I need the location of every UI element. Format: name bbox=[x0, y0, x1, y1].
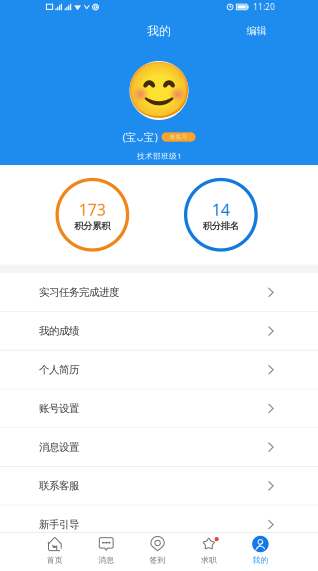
staticText: 11:20 bbox=[253, 2, 275, 12]
staticText: 个人简历 bbox=[39, 363, 79, 376]
staticText: 积分排名 bbox=[203, 220, 239, 232]
button[interactable]: 个人简历 bbox=[0, 351, 318, 390]
staticText: 积分累积 bbox=[74, 220, 110, 232]
button[interactable]: 我的成绩 bbox=[0, 312, 318, 351]
button[interactable]: 联系客服 bbox=[0, 467, 318, 506]
button[interactable]: 我的 bbox=[235, 533, 286, 571]
staticText: 求职 bbox=[201, 555, 217, 565]
staticText: 首页 bbox=[47, 555, 63, 565]
staticText: 新手引导 bbox=[39, 518, 79, 531]
staticText: 173 bbox=[79, 199, 106, 220]
button[interactable]: 实习任务完成进度 bbox=[0, 273, 318, 312]
button[interactable]: 编辑 bbox=[238, 14, 274, 48]
staticText: 我的 bbox=[252, 555, 268, 565]
staticText: 技术部班级1 bbox=[137, 150, 181, 161]
staticText: 账号设置 bbox=[39, 402, 79, 415]
button[interactable]: 消息设置 bbox=[0, 428, 318, 467]
staticText: 我的成绩 bbox=[39, 324, 79, 338]
staticText: 14 bbox=[212, 199, 230, 220]
staticText: 消息 bbox=[98, 555, 114, 565]
staticText: 联系客服 bbox=[39, 479, 79, 492]
staticText: (宝ᴗ宝) bbox=[122, 130, 157, 144]
staticText: 我的 bbox=[147, 23, 171, 38]
staticText: 😊 bbox=[125, 59, 193, 122]
button[interactable]: 新手引导 bbox=[0, 506, 318, 544]
staticText: 消息设置 bbox=[39, 441, 79, 454]
staticText: 实习任务完成进度 bbox=[39, 286, 119, 299]
staticText: 未实习 bbox=[169, 133, 187, 141]
staticText: 签到 bbox=[150, 555, 166, 565]
button[interactable]: 求职 bbox=[183, 533, 235, 571]
button[interactable]: 首页 bbox=[29, 533, 80, 571]
button[interactable]: 消息 bbox=[80, 533, 132, 571]
button[interactable]: 账号设置 bbox=[0, 390, 318, 428]
button[interactable]: 签到 bbox=[132, 533, 183, 571]
staticText: 编辑 bbox=[246, 25, 266, 37]
